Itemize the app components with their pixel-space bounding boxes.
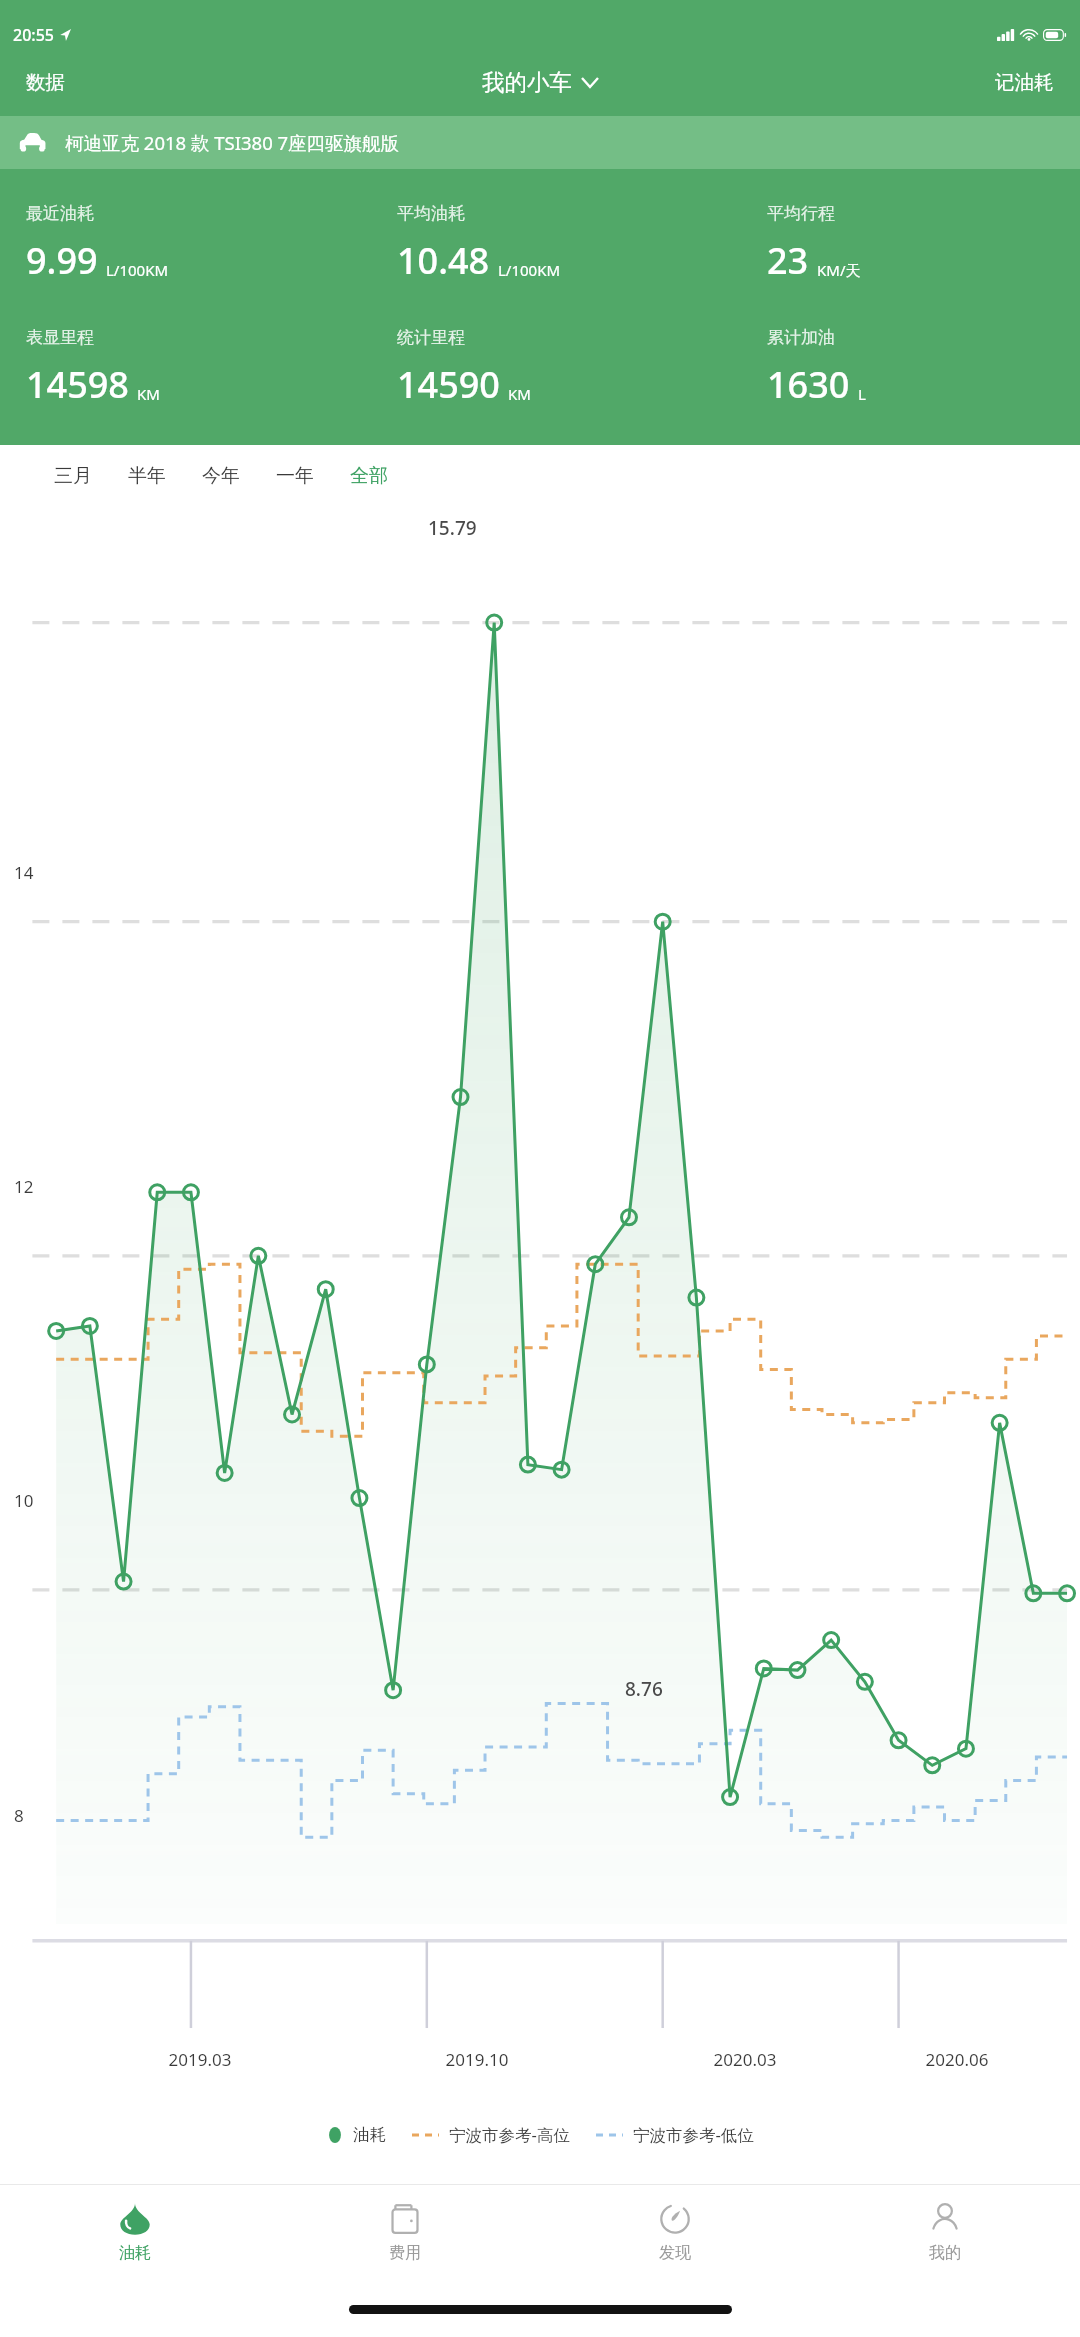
- staticText: 1630: [767, 360, 850, 409]
- staticText: 14598: [26, 360, 129, 409]
- button[interactable]: 我的小车: [468, 60, 612, 104]
- staticText: 油耗: [119, 2243, 151, 2263]
- staticText: 15.79: [428, 515, 477, 541]
- staticText: 14590: [397, 360, 500, 409]
- staticText: 今年: [202, 464, 240, 488]
- staticText: 我的小车: [482, 68, 572, 96]
- button[interactable]: 费用: [270, 2185, 540, 2281]
- button[interactable]: 今年: [184, 455, 258, 497]
- staticText: 费用: [389, 2243, 421, 2263]
- staticText: 我的: [929, 2243, 961, 2263]
- staticText: 14: [14, 861, 34, 884]
- staticText: 油耗: [353, 2124, 386, 2145]
- button[interactable]: 全部: [332, 455, 406, 497]
- staticText: L/100KM: [106, 260, 169, 280]
- staticText: 12: [14, 1175, 34, 1198]
- button[interactable]: 我的: [810, 2185, 1080, 2281]
- staticText: L: [858, 384, 866, 404]
- staticText: 2020.03: [665, 2048, 825, 2071]
- button[interactable]: 油耗: [0, 2185, 270, 2281]
- staticText: 累计加油: [767, 327, 835, 348]
- button[interactable]: 发现: [540, 2185, 810, 2281]
- button[interactable]: 一年: [258, 455, 332, 497]
- staticText: 发现: [659, 2243, 691, 2263]
- staticText: KM/天: [817, 260, 861, 280]
- staticText: 全部: [350, 464, 388, 488]
- button[interactable]: 三月: [36, 455, 110, 497]
- staticText: KM: [508, 384, 531, 404]
- staticText: 9.99: [26, 236, 98, 285]
- staticText: 平均行程: [767, 203, 835, 224]
- staticText: 最近油耗: [26, 203, 94, 224]
- staticText: 三月: [54, 464, 92, 488]
- staticText: 半年: [128, 464, 166, 488]
- staticText: 柯迪亚克 2018 款 TSI380 7座四驱旗舰版: [65, 130, 400, 155]
- staticText: 8.76: [625, 1676, 663, 1702]
- staticText: 10.48: [397, 236, 490, 285]
- staticText: 一年: [276, 464, 314, 488]
- staticText: 8: [14, 1804, 24, 1827]
- staticText: 23: [767, 236, 809, 285]
- staticText: KM: [137, 384, 160, 404]
- staticText: 2019.03: [120, 2048, 280, 2071]
- staticText: 2020.06: [877, 2048, 1037, 2071]
- staticText: 表显里程: [26, 327, 94, 348]
- staticText: 10: [14, 1489, 34, 1512]
- staticText: 平均油耗: [397, 203, 465, 224]
- button[interactable]: 记油耗: [981, 60, 1068, 105]
- button[interactable]: 数据: [12, 60, 79, 105]
- staticText: 2019.10: [397, 2048, 557, 2071]
- staticText: 宁波市参考-低位: [633, 2123, 754, 2146]
- staticText: L/100KM: [498, 260, 561, 280]
- staticText: 20:55: [13, 24, 54, 46]
- staticText: 宁波市参考-高位: [449, 2123, 570, 2146]
- staticText: 统计里程: [397, 327, 465, 348]
- staticText: 记油耗: [995, 70, 1054, 95]
- button[interactable]: 柯迪亚克 2018 款 TSI380 7座四驱旗舰版: [0, 116, 1080, 169]
- staticText: 数据: [26, 70, 65, 95]
- button[interactable]: 半年: [110, 455, 184, 497]
